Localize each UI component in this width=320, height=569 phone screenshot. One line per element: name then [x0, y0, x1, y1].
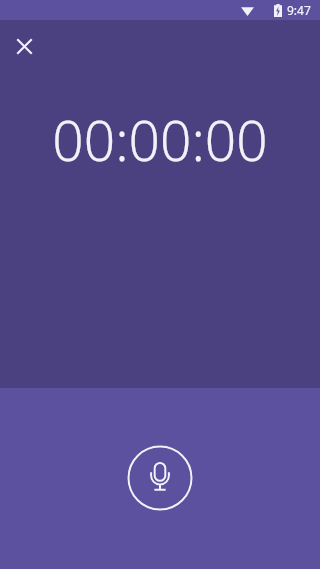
button[interactable]: Record with microphone [125, 443, 195, 513]
staticText: 9:47 [287, 2, 311, 18]
staticText: 00:00:00 [52, 102, 268, 177]
button[interactable]: Close [8, 30, 40, 62]
